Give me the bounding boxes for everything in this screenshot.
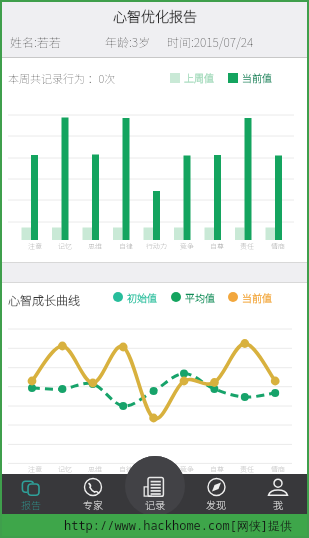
button[interactable]: 记录 <box>124 474 186 514</box>
staticText: 年龄:3岁 <box>105 33 151 50</box>
staticText: 本周共记录行为 ：0次 <box>8 70 116 86</box>
staticText: 责任 <box>240 241 254 251</box>
staticText: 注意 <box>28 241 42 251</box>
staticText: 思维 <box>88 241 102 251</box>
staticText: 心智优化报告 <box>113 6 197 26</box>
staticText: 发现 <box>206 497 226 511</box>
staticText: 记忆 <box>58 464 72 474</box>
staticText: 竞争 <box>180 241 194 251</box>
staticText: 情商 <box>271 241 285 251</box>
staticText: 思维 <box>88 464 102 474</box>
staticText: 自律 <box>119 241 133 251</box>
staticText: 当前值 <box>242 70 272 84</box>
staticText: 专家 <box>83 497 103 511</box>
button[interactable]: http://www.hackhome.com[网侠]提供 <box>0 514 309 538</box>
staticText: http://www.hackhome.com[网侠]提供 <box>64 517 293 533</box>
staticText: 记忆 <box>58 241 72 251</box>
staticText: 姓名:若若 <box>10 33 61 50</box>
staticText: 报告 <box>21 497 41 511</box>
staticText: 责任 <box>240 464 254 474</box>
staticText: 自尊 <box>210 464 224 474</box>
staticText: 情商 <box>271 464 285 474</box>
staticText: 记录 <box>145 497 165 511</box>
staticText: 平均值 <box>185 290 215 304</box>
staticText: 上周值 <box>184 70 214 84</box>
button[interactable]: 我 <box>247 474 309 514</box>
staticText: 自律 <box>119 464 133 474</box>
staticText: 注意 <box>28 464 42 474</box>
button[interactable]: 报告 <box>0 474 62 514</box>
button[interactable]: 专家 <box>62 474 124 514</box>
staticText: 心智成长曲线 <box>8 291 81 308</box>
staticText: 我 <box>273 497 283 511</box>
staticText: 当前值 <box>242 290 272 304</box>
button[interactable]: 发现 <box>185 474 247 514</box>
staticText: 自尊 <box>210 241 224 251</box>
staticText: 行动力 <box>146 241 167 251</box>
staticText: 时间:2015/07/24 <box>167 33 254 50</box>
staticText: 竞争 <box>180 464 194 474</box>
staticText: 初始值 <box>127 290 157 304</box>
